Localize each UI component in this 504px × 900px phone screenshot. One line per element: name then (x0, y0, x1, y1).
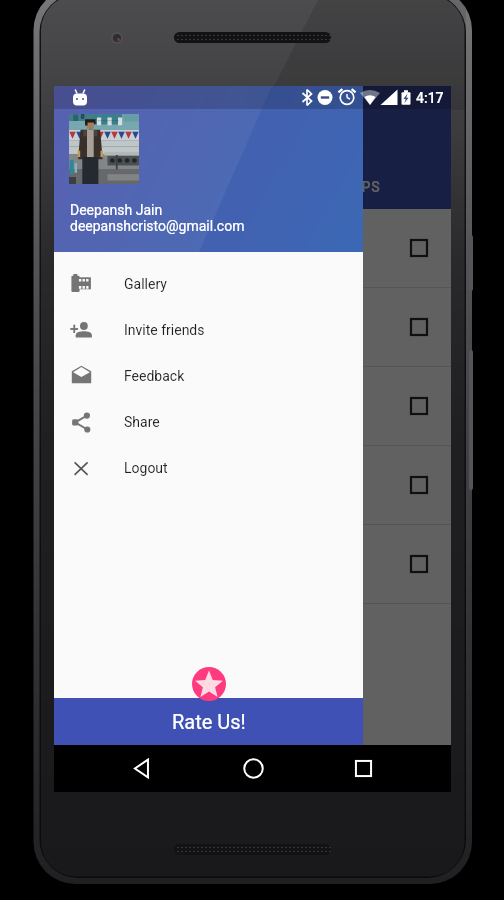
button[interactable]: Back (118, 745, 166, 792)
staticText: Invite friends (124, 322, 205, 338)
staticText: 4:17 (416, 90, 444, 106)
button[interactable]: Invite friends (54, 307, 363, 353)
button[interactable]: Feedback (54, 353, 363, 399)
staticText: Share (124, 414, 160, 430)
staticText: Rate Us! (172, 710, 246, 733)
staticText: Logout (124, 460, 168, 476)
button[interactable]: Share (54, 399, 363, 445)
staticText: Gallery (124, 276, 167, 292)
button[interactable]: Recent apps (339, 745, 387, 792)
staticText: Deepansh Jain (70, 202, 163, 218)
button[interactable]: Rate Us (192, 667, 226, 701)
button[interactable]: Logout (54, 445, 363, 491)
staticText: deepanshcristo@gmail.com (70, 218, 245, 234)
button[interactable] (54, 525, 451, 603)
button[interactable] (54, 446, 451, 524)
staticText: Feedback (124, 368, 185, 384)
button[interactable] (54, 367, 451, 445)
button[interactable] (54, 288, 451, 366)
button[interactable]: Rate Us! (54, 698, 363, 745)
staticText: GAMES (131, 179, 182, 195)
staticText: APPS (342, 179, 381, 195)
button[interactable]: Gallery (54, 261, 363, 307)
button[interactable]: Home (229, 745, 277, 792)
button[interactable] (54, 209, 451, 287)
